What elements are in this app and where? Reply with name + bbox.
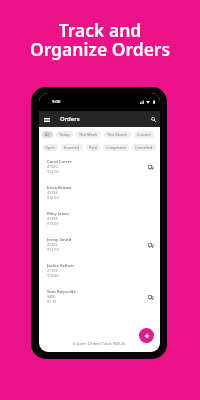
staticText: 41093 [47,164,58,169]
button[interactable]: Jackie Kellner [39,259,160,285]
staticText: $7.75 [47,299,57,304]
staticText: Jenny Smith [47,236,72,242]
staticText: Invoiced [64,145,80,150]
button[interactable]: Erica Brown [39,181,160,207]
staticText: Jackie Kellner [47,262,75,268]
button[interactable]: Sam Reynolds [39,285,160,311]
staticText: Open [45,145,55,150]
staticText: 6 Open Orders Total: $68.25 [73,341,126,346]
staticText: Paid [89,145,97,150]
button[interactable]: This Week [76,131,101,138]
staticText: Carol Carter [47,158,72,164]
button[interactable]: Add new order [139,328,154,343]
button[interactable]: Today [56,131,73,138]
button[interactable]: Carol Carter [39,155,160,181]
staticText: Today [59,132,70,137]
button[interactable]: Invoiced [61,144,83,151]
button[interactable]: Completed [103,144,129,151]
staticText: 9:08 [52,99,61,105]
staticText: $10.60 [47,195,59,200]
staticText: $12.70 [47,247,59,252]
button[interactable]: Open navigation menu [41,114,52,125]
button[interactable]: This Month [104,131,131,138]
staticText: This Month [107,132,128,137]
button[interactable]: Custom [134,131,154,138]
staticText: All [45,132,50,137]
staticText: Sam Reynolds [47,288,76,294]
button[interactable]: Search [148,114,159,125]
button[interactable]: Jenny Smith [39,233,160,259]
staticText: Custom [137,132,151,137]
staticText: Track and Organize Orders [0,18,200,61]
button[interactable]: All [42,131,53,138]
button[interactable]: Paid [86,144,100,151]
staticText: Riley Jones [47,210,69,216]
staticText: 41094 [47,216,58,221]
staticText: $12.70 [47,169,59,174]
staticText: 41194 [47,190,58,195]
button[interactable]: Open [42,144,58,151]
staticText: 21193 [47,268,58,273]
staticText: 9400 [47,294,56,299]
staticText: This Week [79,132,98,137]
staticText: 41202 [47,242,58,247]
staticText: $15.00 [47,221,59,226]
button[interactable]: Cancelled [132,144,156,151]
staticText: $10.60 [47,273,59,278]
staticText: Cancelled [135,145,153,150]
button[interactable]: Riley Jones [39,207,160,233]
staticText: Erica Brown [47,184,72,190]
staticText: Orders [60,115,80,123]
staticText: Completed [106,145,126,150]
